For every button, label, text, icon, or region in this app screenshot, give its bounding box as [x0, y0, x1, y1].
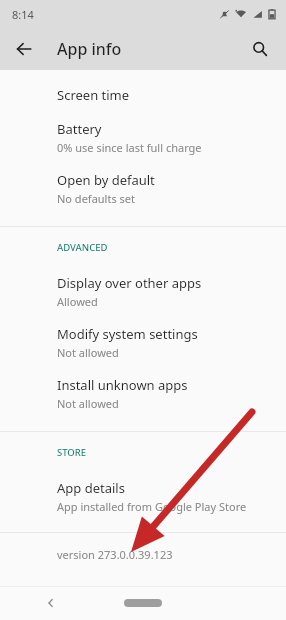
staticText: Modify system settings — [57, 325, 198, 343]
staticText: version 273.0.0.39.123 — [57, 547, 173, 562]
staticText: ADVANCED — [57, 241, 108, 254]
staticText: 0% use since last full charge — [57, 140, 202, 155]
staticText: Battery — [57, 120, 102, 138]
staticText: Screen time — [57, 86, 130, 104]
button[interactable]: Back — [6, 31, 42, 67]
staticText: Allowed — [57, 294, 98, 309]
button[interactable]: App details — [0, 473, 286, 524]
button[interactable]: Install unknown apps — [0, 370, 286, 421]
button[interactable]: Modify system settings — [0, 319, 286, 370]
staticText: App info — [57, 38, 122, 60]
staticText: Install unknown apps — [57, 376, 188, 394]
button[interactable]: Open by default — [0, 165, 286, 216]
staticText: Not allowed — [57, 396, 119, 411]
button[interactable]: Display over other apps — [0, 268, 286, 319]
staticText: No defaults set — [57, 191, 135, 206]
staticText: Not allowed — [57, 345, 119, 360]
staticText: App details — [57, 479, 125, 497]
staticText: 8:14 — [12, 7, 34, 22]
staticText: Open by default — [57, 171, 155, 189]
button[interactable]: Back — [38, 590, 64, 616]
button[interactable]: Battery — [0, 114, 286, 165]
button[interactable]: Search — [242, 31, 278, 67]
staticText: App installed from Google Play Store — [57, 499, 247, 514]
staticText: STORE — [57, 446, 87, 459]
button[interactable]: Home — [124, 599, 162, 607]
button[interactable]: Screen time — [0, 80, 286, 114]
staticText: Display over other apps — [57, 274, 202, 292]
